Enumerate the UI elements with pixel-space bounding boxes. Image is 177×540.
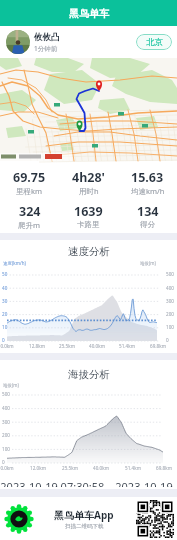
staticText: 300 [166,298,174,304]
staticText: 里程km [16,186,43,196]
staticText: 0 [166,337,169,343]
staticText: 400 [166,285,174,291]
staticText: 扫描二维码下载 [65,523,104,530]
staticText: 40.0km [93,465,109,471]
button[interactable]: 北京 [136,34,172,50]
staticText: 1分钟前 [34,44,58,53]
button[interactable] [0,58,177,161]
staticText: 均速km/h [131,186,165,196]
staticText: 50 [2,271,8,277]
staticText: 用时h [79,186,99,196]
staticText: 500 [2,391,10,397]
staticText: 200 [2,432,10,438]
staticText: 10 [2,324,8,330]
staticText: 51.4km [125,465,141,471]
staticText: 4h28' [72,169,105,186]
staticText: 速度(km/h) [3,260,26,266]
staticText: 15.63 [131,169,164,186]
staticText: 爬升m [18,220,41,230]
staticText: 200 [166,311,174,317]
staticText: 25.5km [62,465,78,471]
staticText: 黑鸟单车App [54,508,114,522]
button[interactable]: 黑鸟单车 logo [5,505,33,533]
staticText: 0.0km [0,465,14,471]
staticText: 海拔(m) [140,260,156,266]
staticText: 北京 [146,37,163,48]
staticText: 30 [2,298,8,304]
staticText: 100 [166,324,174,330]
staticText: 海拔(m) [3,382,19,388]
staticText: 1639 [74,203,103,220]
staticText: 卡路里 [77,220,100,229]
staticText: 2023-10-19 07:30:58—2023-10-19 12:04:52 [0,479,175,487]
staticText: 攸攸凸 [34,32,60,43]
staticText: 134 [137,203,159,220]
staticText: 0 [2,459,5,465]
staticText: 0.0km [0,343,14,349]
staticText: 500 [166,271,174,277]
staticText: 20 [2,311,8,317]
staticText: 51.4km [119,343,135,349]
staticText: 69.75 [13,169,46,186]
staticText: 速度分析 [68,245,110,258]
staticText: 25.5km [59,343,75,349]
staticText: 12.0km [30,465,46,471]
staticText: 69.8km [156,465,172,471]
staticText: 100 [2,446,10,452]
staticText: 得分 [140,220,155,229]
staticText: 69.8km [150,343,166,349]
staticText: 海拔分析 [68,368,110,381]
staticText: 400 [2,405,10,411]
staticText: 12.8km [29,343,45,349]
staticText: 324 [19,203,41,220]
staticText: 40 [2,285,8,291]
staticText: 40.0km [89,343,105,349]
staticText: 黑鸟单车 [69,7,109,20]
staticText: 300 [2,419,10,425]
staticText: 0 [2,337,5,343]
